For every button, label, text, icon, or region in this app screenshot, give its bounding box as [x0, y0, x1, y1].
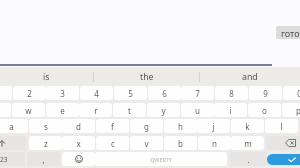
button[interactable]: w	[12, 103, 45, 117]
staticText: QWERTY	[150, 156, 172, 163]
button[interactable]: d	[62, 119, 95, 133]
button[interactable]: z	[29, 136, 62, 150]
staticText: готово	[281, 27, 300, 39]
button[interactable]: p	[282, 103, 300, 117]
button[interactable]: the	[94, 67, 199, 87]
staticText: i	[229, 105, 232, 116]
button[interactable]: k	[231, 119, 264, 133]
button[interactable]: h	[164, 119, 197, 133]
button[interactable]: m	[231, 136, 264, 150]
button[interactable]: e	[46, 103, 79, 117]
button[interactable]: o	[248, 103, 281, 117]
staticText: is	[43, 71, 50, 83]
button[interactable]: 9	[249, 86, 282, 100]
staticText: the	[140, 71, 154, 83]
staticText: v	[144, 138, 149, 149]
staticText: .	[247, 154, 250, 165]
button[interactable]: g	[130, 119, 163, 133]
button[interactable]: c	[96, 136, 129, 150]
button[interactable]: 6	[148, 86, 181, 100]
button[interactable]: Backspace	[266, 136, 300, 150]
button[interactable]: y	[147, 103, 180, 117]
button[interactable]: s	[29, 119, 62, 133]
staticText: p	[296, 105, 300, 116]
button[interactable]: готово	[276, 26, 300, 39]
button[interactable]: 4	[80, 86, 113, 100]
staticText: w	[25, 105, 32, 116]
staticText: s	[44, 121, 48, 132]
button[interactable]: 8	[215, 86, 248, 100]
button[interactable]: Emoji	[62, 152, 95, 166]
staticText: b	[178, 138, 183, 149]
button[interactable]: is	[0, 67, 93, 87]
button[interactable]: and	[200, 67, 300, 87]
staticText: 6	[162, 88, 167, 99]
staticText: j	[212, 121, 215, 132]
button[interactable]: ,	[27, 152, 60, 166]
staticText: 3	[60, 88, 65, 99]
button[interactable]: i	[214, 103, 247, 117]
staticText: u	[195, 105, 200, 116]
staticText: 2	[27, 88, 32, 99]
staticText: t	[128, 105, 131, 116]
staticText: 5	[128, 88, 133, 99]
button[interactable]: 5	[114, 86, 147, 100]
staticText: n	[212, 138, 217, 149]
staticText: d	[76, 121, 81, 132]
button[interactable]: x	[62, 136, 95, 150]
button[interactable]: l	[265, 119, 298, 133]
button[interactable]: u	[181, 103, 214, 117]
staticText: g	[144, 121, 149, 132]
staticText: 7	[195, 88, 200, 99]
staticText: y	[161, 105, 166, 116]
staticText: 9	[263, 88, 268, 99]
staticText: 8	[229, 88, 234, 99]
button[interactable]: v	[130, 136, 163, 150]
button[interactable]: 0	[283, 86, 300, 100]
staticText: z	[44, 138, 48, 149]
staticText: c	[111, 138, 115, 149]
staticText: e	[60, 105, 65, 116]
button[interactable]: QWERTY	[95, 152, 227, 166]
staticText: and	[242, 71, 258, 83]
staticText: f	[111, 121, 114, 132]
button[interactable]: 3	[46, 86, 79, 100]
staticText: o	[262, 105, 267, 116]
staticText: 0	[297, 88, 300, 99]
button[interactable]: b	[164, 136, 197, 150]
staticText: a	[9, 121, 14, 132]
button[interactable]: ?123	[0, 152, 25, 166]
staticText: m	[244, 138, 252, 149]
button[interactable]: .	[230, 152, 267, 166]
staticText: 4	[94, 88, 99, 99]
staticText: r	[94, 105, 98, 116]
button[interactable]: f	[96, 119, 129, 133]
staticText: x	[76, 138, 81, 149]
button[interactable]: Enter	[267, 154, 300, 165]
button[interactable]: 7	[181, 86, 214, 100]
staticText: ?123	[0, 155, 8, 164]
button[interactable]: 2	[13, 86, 46, 100]
button[interactable]: n	[198, 136, 231, 150]
button[interactable]: j	[197, 119, 230, 133]
button[interactable]: a	[0, 119, 28, 133]
staticText: k	[245, 121, 250, 132]
button[interactable]: t	[113, 103, 146, 117]
staticText: ,	[42, 154, 45, 165]
staticText: h	[178, 121, 183, 132]
staticText: l	[280, 121, 283, 132]
button[interactable]: r	[79, 103, 112, 117]
button[interactable]: Shift	[0, 136, 26, 150]
